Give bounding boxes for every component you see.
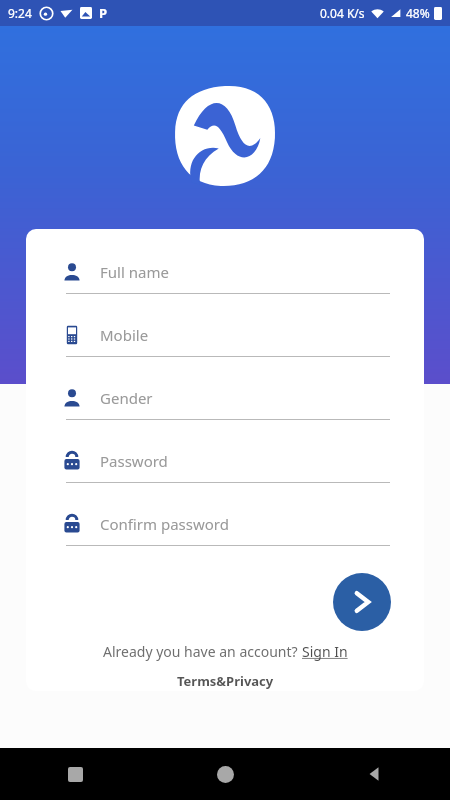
button[interactable]: Sign In [302,642,348,661]
button[interactable]: Back [300,748,450,800]
button[interactable]: Terms&Privacy [177,672,274,690]
staticText: Terms&Privacy [177,672,274,690]
staticText: Confirm password [100,514,229,534]
staticText: Already you have an account? [103,642,302,661]
button[interactable]: Password [26,440,424,503]
button[interactable]: Gender [26,377,424,440]
button[interactable]: Full name [26,251,424,314]
staticText: Gender [100,388,153,408]
staticText: Full name [100,262,169,282]
staticText: P [99,4,108,22]
button[interactable]: Home [150,748,300,800]
staticText: Mobile [100,325,149,345]
staticText: 48% [406,5,430,21]
staticText: 9:24 [8,5,32,21]
staticText: Password [100,451,168,471]
staticText: Sign In [302,642,348,661]
staticText: 0.04 K/s [320,5,365,21]
button[interactable]: Mobile [26,314,424,377]
button[interactable]: Recent apps [0,748,150,800]
button[interactable]: Submit sign up [333,573,391,631]
button[interactable]: Confirm password [26,503,424,566]
